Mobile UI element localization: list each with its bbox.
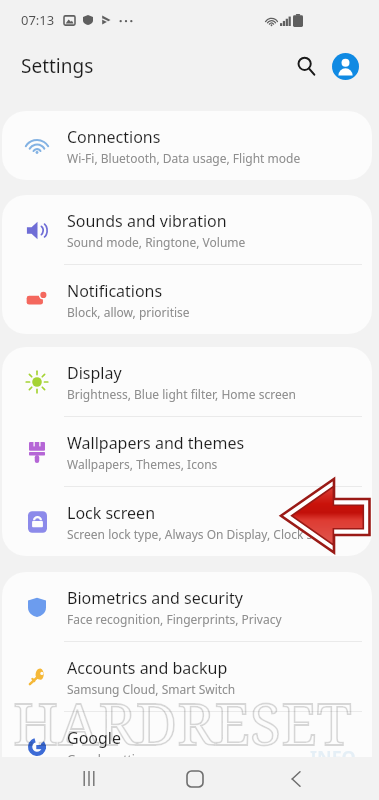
button[interactable]: Accounts and backup [2, 642, 372, 711]
staticText: Samsung Cloud, Smart Switch [67, 681, 236, 697]
staticText: Sound mode, Ringtone, Volume [67, 234, 246, 250]
staticText: Notifications [67, 280, 163, 302]
staticText: Lock screen [67, 502, 156, 524]
staticText: Google [67, 727, 122, 749]
staticText: Brightness, Blue light filter, Home scre… [67, 386, 296, 402]
button[interactable]: Account [332, 53, 359, 80]
button[interactable]: Sounds and vibration [2, 195, 372, 264]
staticText: Wallpapers and themes [67, 432, 245, 454]
staticText: Face recognition, Fingerprints, Privacy [67, 611, 282, 627]
staticText: Display [67, 362, 122, 384]
staticText: Wallpapers, Themes, Icons [67, 456, 218, 472]
button[interactable]: Display [2, 347, 372, 416]
staticText: INFO [310, 745, 356, 770]
button[interactable]: Notifications [2, 265, 372, 334]
button[interactable]: Search [289, 49, 323, 83]
staticText: Biometrics and security [67, 587, 244, 609]
staticText: Wi-Fi, Bluetooth, Data usage, Flight mod… [67, 150, 301, 166]
button[interactable]: Back [254, 757, 338, 800]
button[interactable]: Recents [47, 757, 131, 800]
staticText: Settings [21, 53, 94, 79]
button[interactable]: Biometrics and security [2, 572, 372, 641]
button[interactable]: Home [153, 757, 237, 800]
staticText: Google settings [67, 751, 156, 767]
button[interactable]: Connections [2, 111, 372, 180]
staticText: HARDRESET [13, 684, 352, 762]
staticText: 07:13 [21, 11, 55, 29]
staticText: Sounds and vibration [67, 210, 227, 232]
staticText: Screen lock type, Always On Display, Clo… [67, 526, 333, 542]
button[interactable]: Google [2, 712, 372, 781]
staticText: Accounts and backup [67, 657, 228, 679]
button[interactable]: Lock screen [2, 487, 372, 556]
staticText: Block, allow, prioritise [67, 304, 190, 320]
button[interactable]: Wallpapers and themes [2, 417, 372, 486]
staticText: Connections [67, 126, 161, 148]
